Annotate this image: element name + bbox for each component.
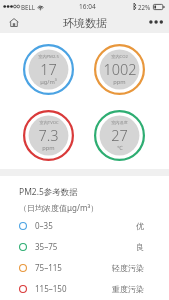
- staticText: 7.3: [38, 125, 59, 145]
- button[interactable]: 室内TVOC: [23, 110, 74, 161]
- staticText: 重度污染: [112, 284, 144, 294]
- staticText: 室内CO2: [111, 54, 128, 60]
- staticText: 轻度污染: [112, 263, 144, 273]
- staticText: μg/m³: [40, 78, 57, 86]
- staticText: 室内PM2.5: [38, 54, 59, 60]
- staticText: 环境数据: [63, 16, 107, 30]
- staticText: 0–35: [35, 220, 53, 231]
- button[interactable]: 室内温度: [94, 110, 145, 161]
- staticText: 17: [40, 59, 57, 79]
- button[interactable]: More options: [142, 12, 168, 32]
- staticText: （日均浓度值μg/m³）: [19, 202, 99, 213]
- staticText: 室内TVOC: [39, 120, 59, 126]
- staticText: 22%: [138, 3, 151, 11]
- button[interactable]: 0–35: [0, 215, 169, 236]
- staticText: 16:04: [79, 2, 96, 11]
- staticText: 良: [136, 242, 144, 252]
- staticText: PM2.5参考数据: [19, 186, 78, 198]
- staticText: ppm: [113, 78, 126, 86]
- staticText: 27: [111, 125, 128, 145]
- staticText: 75–115: [35, 262, 62, 273]
- staticText: ppm: [42, 144, 55, 152]
- staticText: 优: [136, 221, 144, 231]
- button[interactable]: 35–75: [0, 236, 169, 257]
- staticText: 1002: [103, 59, 137, 79]
- button[interactable]: Home: [1, 12, 27, 32]
- staticText: 35–75: [35, 241, 58, 252]
- staticText: ℃: [117, 144, 123, 152]
- staticText: 室内温度: [111, 120, 128, 125]
- staticText: BELL: [21, 3, 35, 11]
- button[interactable]: 室内PM2.5: [23, 44, 74, 95]
- staticText: 115–150: [35, 283, 67, 294]
- button[interactable]: 115–150: [0, 278, 169, 299]
- button[interactable]: 75–115: [0, 257, 169, 278]
- button[interactable]: 室内CO2: [94, 44, 145, 95]
